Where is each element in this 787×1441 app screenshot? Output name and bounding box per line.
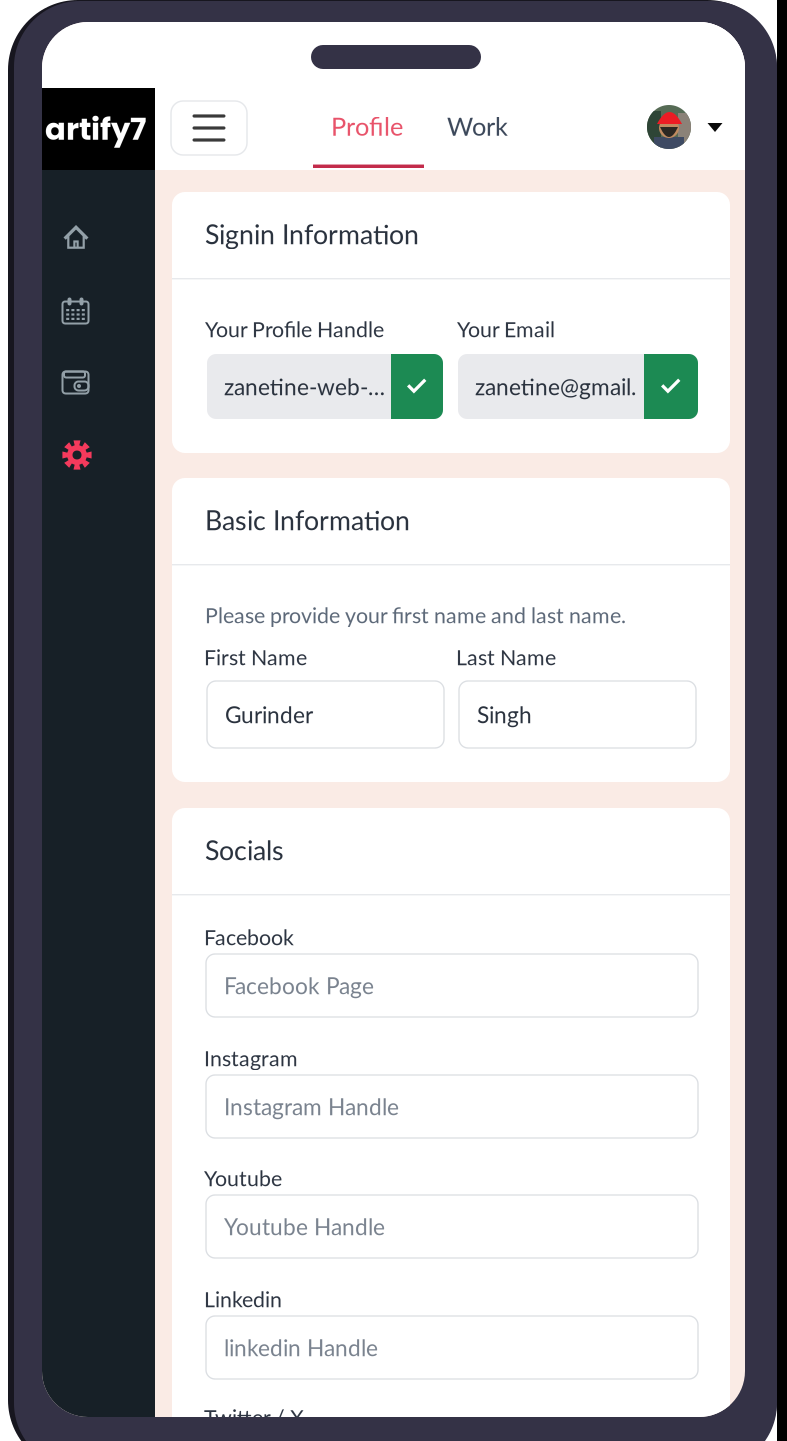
staticText: First Name [204,644,307,670]
button[interactable]: Gurinder [207,681,444,748]
button[interactable]: Calendar [62,297,88,323]
staticText: Your Profile Handle [205,316,384,342]
button[interactable]: Facebook Page [206,954,698,1017]
staticText: Youtube Handle [224,1213,385,1240]
staticText: zanetine@gmail. [475,373,636,400]
staticText: Signin Information [205,218,419,250]
staticText: Singh [477,701,532,728]
staticText: Socials [205,834,284,866]
button[interactable]: Singh [459,681,696,748]
staticText: Linkedin [204,1286,282,1312]
staticText: artify7 [45,107,146,150]
button[interactable]: Wallet [62,369,88,395]
staticText: Last Name [456,644,556,670]
staticText: Instagram [204,1045,298,1071]
staticText: Basic Information [205,504,410,536]
staticText: zanetine-web-de [224,373,388,400]
button[interactable]: zanetine@gmail. [458,354,698,419]
staticText: Profile [331,111,403,141]
staticText: Twitter / X [204,1404,304,1430]
button[interactable]: Profile [313,80,424,170]
button[interactable]: Settings [62,440,92,470]
button[interactable]: linkedin Handle [206,1316,698,1379]
button[interactable]: zanetine-web-de [207,354,443,419]
button[interactable]: Menu [171,101,247,155]
staticText: Please provide your first name and last … [205,602,626,628]
staticText: Youtube [204,1165,282,1191]
button[interactable]: Work [447,111,547,141]
button[interactable]: Youtube Handle [206,1195,698,1258]
button[interactable]: Home [63,224,89,250]
staticText: Facebook [204,924,294,950]
staticText: Gurinder [225,701,313,728]
staticText: linkedin Handle [224,1334,378,1361]
button[interactable]: Instagram Handle [206,1075,698,1138]
button[interactable]: Account menu [707,123,722,132]
button[interactable]: Account [647,105,691,149]
staticText: Facebook Page [224,972,374,999]
staticText: Instagram Handle [224,1093,399,1120]
staticText: Work [447,111,508,141]
staticText: Your Email [457,316,555,342]
